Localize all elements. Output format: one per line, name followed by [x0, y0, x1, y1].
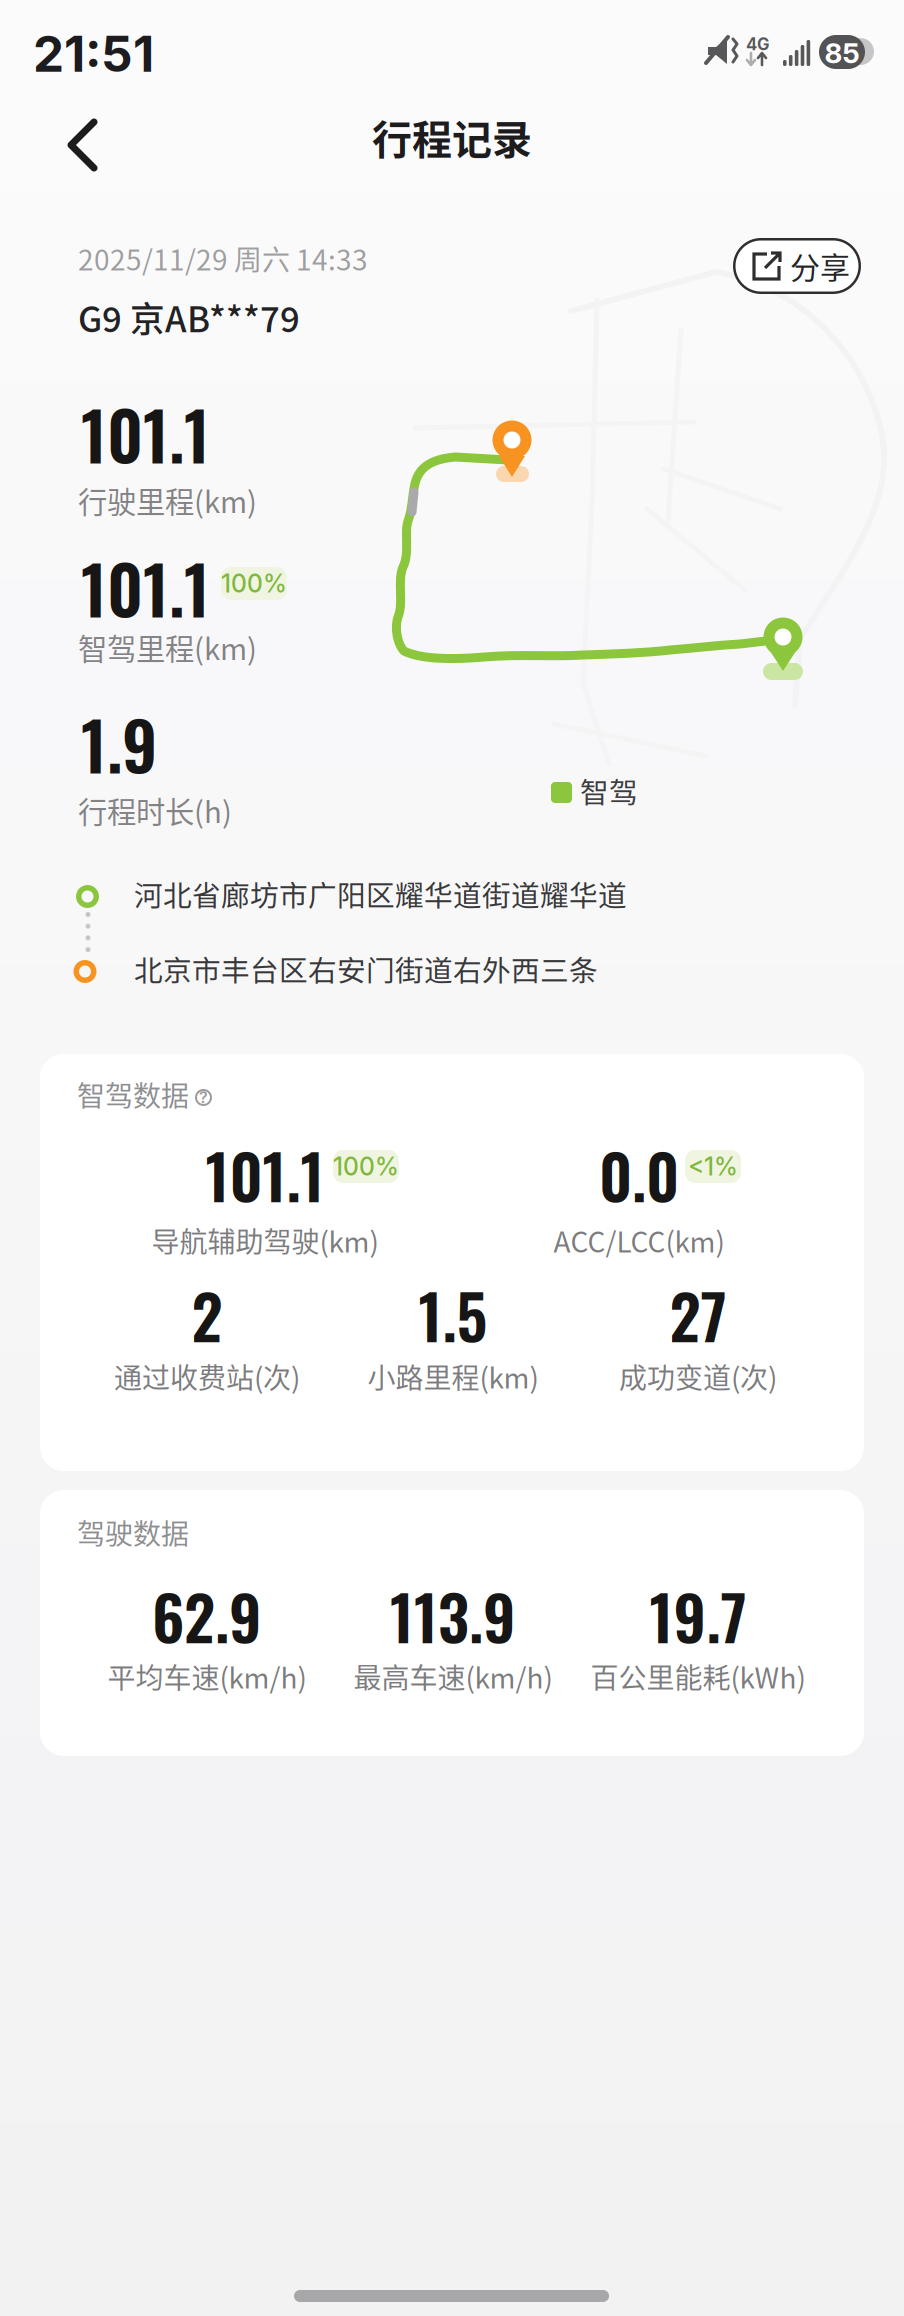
staticText: 智驾里程(km) [78, 626, 257, 668]
staticText: 导航辅助驾驶(km) [151, 1220, 378, 1260]
staticText: 分享 [790, 244, 850, 287]
staticText: 百公里能耗(kWh) [590, 1656, 805, 1696]
staticText: 27 [669, 1269, 726, 1360]
staticText: 21:51 [33, 24, 154, 84]
staticText: 智驾 [580, 770, 638, 811]
staticText: 101.1 [81, 538, 210, 637]
staticText: 62.9 [152, 1570, 262, 1661]
staticText: 101.1 [81, 384, 210, 483]
staticText: 最高车速(km/h) [353, 1656, 552, 1696]
button[interactable]: 分享 [733, 238, 861, 294]
staticText: 0.0 [599, 1129, 679, 1220]
staticText: 85 [824, 36, 859, 70]
staticText: 2 [191, 1269, 222, 1360]
staticText: ACC/LCC(km) [553, 1220, 724, 1260]
staticText: 驾驶数据 [77, 1512, 189, 1552]
staticText: G9 京AB***79 [78, 292, 300, 342]
button[interactable]: 智驾数据说明 [195, 1089, 212, 1106]
staticText: 北京市丰台区右安门街道右外西三条 [134, 948, 598, 989]
staticText: 行程记录 [372, 108, 532, 166]
staticText: 河北省廊坊市广阳区耀华道街道耀华道 [134, 873, 627, 914]
staticText: 19.7 [649, 1570, 746, 1661]
staticText: 行程时长(h) [78, 789, 232, 831]
staticText: 智驾数据 [77, 1074, 189, 1114]
staticText: 成功变道(次) [619, 1356, 777, 1396]
staticText: 2025/11/29 周六 14:33 [78, 238, 368, 278]
staticText: 101.1 [205, 1129, 324, 1220]
staticText: 100% [333, 1152, 399, 1181]
staticText: 小路里程(km) [367, 1356, 538, 1396]
staticText: 行驶里程(km) [78, 479, 257, 521]
staticText: 1.5 [418, 1269, 487, 1360]
staticText: 1.9 [81, 694, 157, 793]
staticText: 通过收费站(次) [114, 1356, 300, 1396]
button[interactable]: Back [60, 116, 106, 174]
staticText: 平均车速(km/h) [107, 1656, 306, 1696]
staticText: <1% [688, 1152, 738, 1181]
staticText: 113.9 [390, 1570, 516, 1661]
staticText: ? [199, 1088, 208, 1107]
staticText: 100% [221, 569, 287, 598]
staticText: 4G [746, 34, 770, 54]
